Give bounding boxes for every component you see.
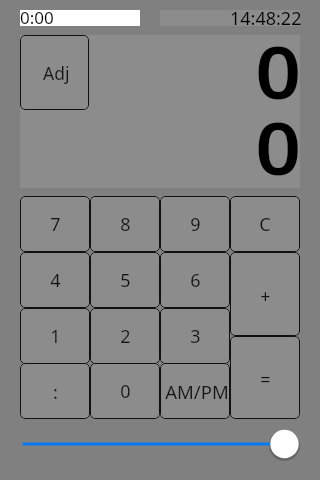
staticText: 14:48:22: [230, 6, 302, 31]
button[interactable]: 8: [90, 196, 160, 252]
staticText: AM/PM: [165, 379, 229, 404]
button[interactable]: =: [230, 336, 300, 419]
button[interactable]: 2: [90, 308, 160, 364]
button[interactable]: 9: [160, 196, 230, 252]
button[interactable]: 1: [20, 308, 90, 364]
button[interactable]: AM/PM: [160, 363, 230, 419]
staticText: 6: [190, 268, 201, 293]
staticText: 0: [255, 97, 301, 196]
staticText: 9: [190, 212, 201, 237]
button[interactable]: 6: [160, 252, 230, 308]
staticText: 4: [50, 268, 61, 293]
button[interactable]: 4: [20, 252, 90, 308]
staticText: :: [53, 380, 58, 405]
staticText: 0: [120, 379, 131, 404]
staticText: Adj: [43, 61, 70, 85]
button[interactable]: Adj: [20, 35, 89, 110]
button[interactable]: 5: [90, 252, 160, 308]
staticText: 7: [50, 212, 61, 237]
staticText: C: [259, 212, 271, 237]
button[interactable]: 7: [20, 196, 90, 252]
staticText: 8: [120, 212, 131, 237]
button[interactable]: 3: [160, 308, 230, 364]
staticText: =: [260, 367, 271, 392]
staticText: 5: [120, 268, 131, 293]
staticText: +: [260, 284, 271, 309]
staticText: 0: [255, 21, 301, 120]
staticText: 1: [50, 324, 61, 349]
button[interactable]: :: [20, 363, 90, 419]
button[interactable]: Time entry: [20, 10, 140, 26]
staticText: 0:00: [20, 6, 54, 29]
staticText: 3: [190, 324, 201, 349]
staticText: 2: [120, 324, 131, 349]
button[interactable]: 0: [90, 363, 160, 419]
button[interactable]: +: [230, 252, 300, 336]
button[interactable]: C: [230, 196, 300, 252]
button[interactable]: Value slider: [10, 424, 310, 464]
